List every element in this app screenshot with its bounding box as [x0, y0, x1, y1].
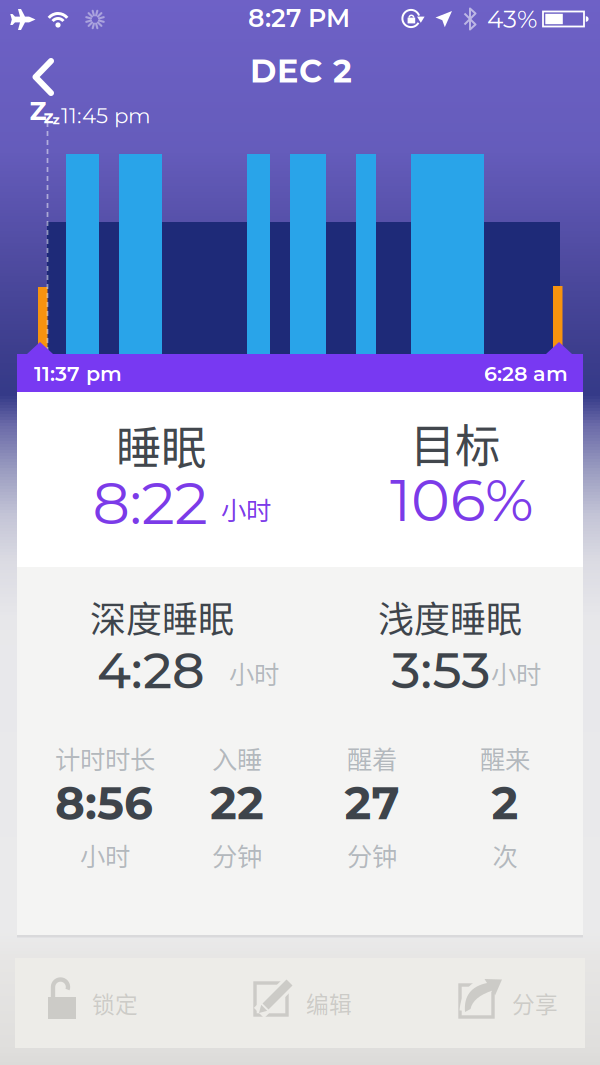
button[interactable]: 锁定 [15, 958, 205, 1048]
staticText: 8:27 PM [248, 3, 350, 33]
staticText: 入睡 [212, 740, 262, 776]
staticText: 8:22 [92, 467, 207, 539]
button[interactable]: 分享 [395, 958, 585, 1048]
staticText: 醒来 [480, 740, 530, 776]
staticText: 小时 [221, 491, 271, 527]
staticText: 22 [210, 775, 264, 831]
staticText: 锁定 [92, 987, 138, 1019]
staticText: 编辑 [306, 987, 352, 1019]
staticText: 4:28 [97, 639, 205, 701]
staticText: 106% [390, 464, 534, 536]
staticText: 2 [491, 775, 518, 831]
staticText: 计时时长 [55, 740, 155, 776]
staticText: Z [29, 96, 46, 126]
staticText: 27 [344, 775, 399, 831]
staticText: 分钟 [347, 837, 397, 873]
button[interactable]: Back [24, 57, 64, 97]
staticText: 小时 [80, 837, 130, 873]
staticText: 醒着 [347, 740, 397, 776]
staticText: 次 [492, 837, 517, 873]
staticText: 目标 [410, 410, 500, 476]
staticText: 小时 [229, 655, 279, 691]
staticText: DEC 2 [250, 51, 352, 90]
staticText: 浅度睡眠 [378, 591, 522, 643]
staticText: z [52, 111, 59, 128]
staticText: 小时 [491, 655, 541, 691]
staticText: 11:45 pm [61, 102, 151, 128]
staticText: 6:28 am [484, 361, 568, 386]
staticText: 43% [487, 4, 537, 34]
staticText: 睡眠 [116, 412, 206, 478]
staticText: 分享 [512, 987, 558, 1019]
staticText: 11:37 pm [34, 361, 122, 386]
button[interactable]: 编辑 [205, 958, 395, 1048]
staticText: 3:53 [391, 639, 490, 701]
staticText: 分钟 [212, 837, 262, 873]
staticText: 深度睡眠 [90, 591, 234, 643]
staticText: 8:56 [55, 775, 153, 831]
staticText: z [43, 105, 53, 128]
